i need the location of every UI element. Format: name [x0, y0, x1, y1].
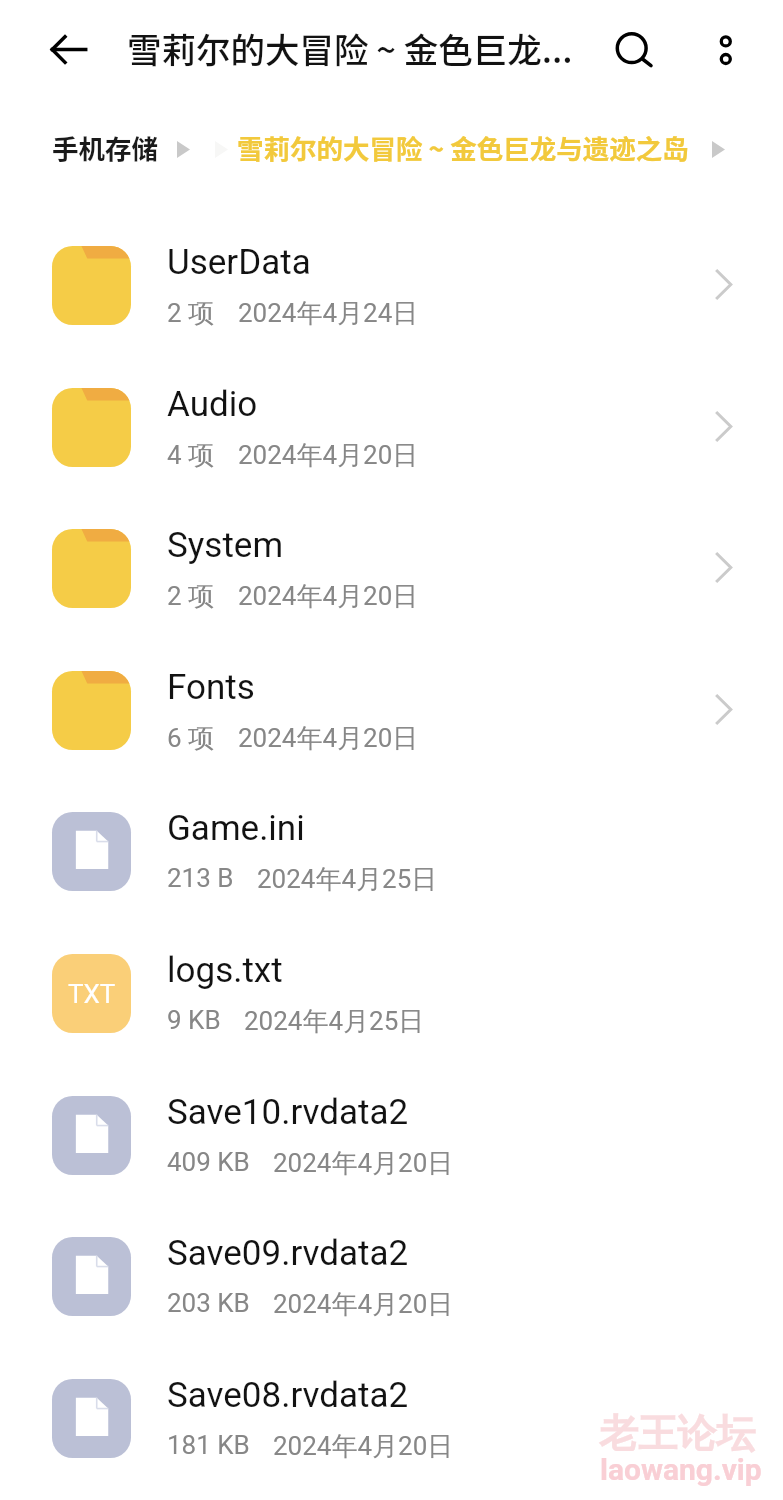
staticText: 老王论坛 [599, 1409, 755, 1458]
staticText: 雪莉尔的大冒险 ~ 金色巨龙... [127, 23, 577, 73]
staticText: 6 项 [167, 722, 215, 755]
staticText: 2024年4月20日 [238, 722, 419, 755]
staticText: TXT [68, 979, 116, 1009]
staticText: laowang.vip [600, 1452, 762, 1487]
staticText: 2024年4月25日 [257, 863, 438, 896]
staticText: Game.ini [167, 808, 305, 849]
button[interactable]: Save08.rvdata2 [0, 1347, 783, 1489]
staticText: 213 B [167, 863, 234, 893]
button[interactable]: Back [40, 22, 96, 78]
button[interactable]: More options [696, 21, 752, 77]
staticText: 9 KB [167, 1005, 221, 1035]
staticText: 4 项 [167, 439, 215, 472]
staticText: 2024年4月24日 [238, 297, 419, 330]
staticText: 手机存储 [52, 128, 158, 162]
staticText: 409 KB [167, 1147, 250, 1177]
staticText: logs.txt [167, 950, 283, 991]
button[interactable]: 手机存储 [52, 122, 158, 168]
staticText: 2024年4月20日 [273, 1430, 454, 1463]
staticText: 2 项 [167, 297, 215, 330]
button[interactable]: Game.ini [0, 780, 783, 922]
staticText: Audio [167, 384, 258, 425]
staticText: 雪莉尔的大冒险 ~ 金色巨龙与遗迹之岛 [237, 128, 689, 162]
staticText: 2024年4月20日 [273, 1147, 454, 1180]
staticText: 181 KB [167, 1430, 250, 1460]
staticText: 2024年4月20日 [238, 580, 419, 613]
button[interactable]: 雪莉尔的大冒险 ~ 金色巨龙与遗迹之岛 [237, 122, 689, 168]
staticText: 2024年4月25日 [244, 1005, 425, 1038]
button[interactable]: Search [604, 21, 660, 77]
staticText: Save08.rvdata2 [167, 1375, 409, 1416]
staticText: 2 项 [167, 580, 215, 613]
button[interactable]: Audio [0, 356, 783, 498]
staticText: Fonts [167, 667, 255, 708]
staticText: 2024年4月20日 [273, 1288, 454, 1321]
staticText: System [167, 525, 284, 566]
staticText: Save10.rvdata2 [167, 1092, 409, 1133]
button[interactable]: Save09.rvdata2 [0, 1205, 783, 1347]
staticText: 203 KB [167, 1288, 250, 1318]
button[interactable]: Fonts [0, 639, 783, 781]
button[interactable]: TXT [0, 922, 783, 1064]
staticText: UserData [167, 242, 311, 283]
staticText: Save09.rvdata2 [167, 1233, 409, 1274]
staticText: 2024年4月20日 [238, 439, 419, 472]
button[interactable]: Save10.rvdata2 [0, 1064, 783, 1206]
button[interactable]: System [0, 497, 783, 639]
button[interactable]: UserData [0, 214, 783, 356]
